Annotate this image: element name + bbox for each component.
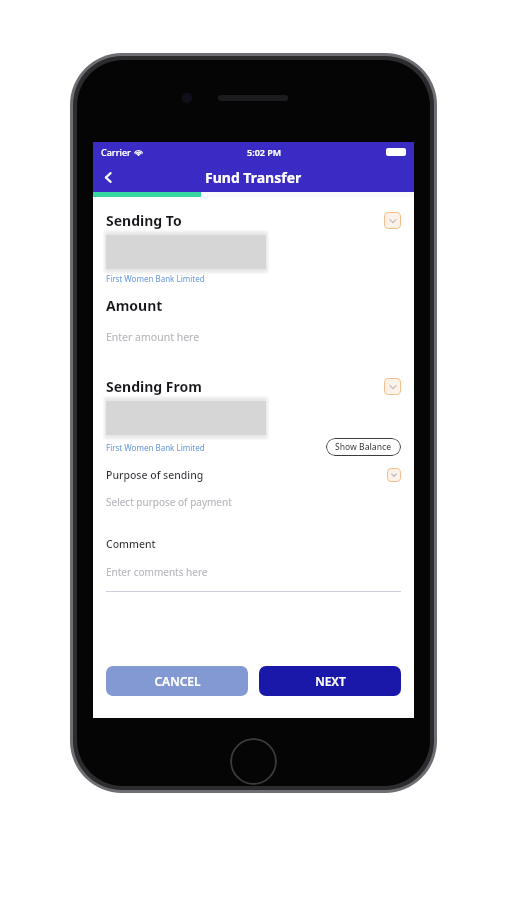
button[interactable]: Open Purpose of sending selector xyxy=(387,468,401,482)
staticText: First Women Bank Limited xyxy=(106,442,205,453)
staticText: Purpose of sending xyxy=(106,468,204,482)
staticText: Comment xyxy=(106,537,156,551)
staticText: Sending From xyxy=(106,377,202,396)
staticText: Sending To xyxy=(106,211,182,230)
button[interactable]: Open Sending From selector xyxy=(384,378,401,395)
button[interactable]: NEXT xyxy=(259,666,401,696)
button[interactable]: Open Sending To selector xyxy=(384,212,401,229)
staticText: NEXT xyxy=(315,673,346,689)
staticText: CANCEL xyxy=(154,673,201,689)
staticText: Amount xyxy=(106,296,163,315)
staticText: Enter comments here xyxy=(106,565,208,579)
staticText: Select purpose of payment xyxy=(106,495,232,509)
button[interactable]: Back xyxy=(93,162,123,192)
staticText: 5:02 PM xyxy=(247,146,282,158)
staticText: Show Balance xyxy=(335,441,392,453)
staticText: Enter amount here xyxy=(106,330,200,344)
button[interactable]: Show Balance xyxy=(326,438,401,456)
staticText: Fund Transfer xyxy=(205,168,302,187)
button[interactable]: CANCEL xyxy=(106,666,248,696)
staticText: Carrier xyxy=(101,146,131,158)
staticText: First Women Bank Limited xyxy=(106,273,205,284)
